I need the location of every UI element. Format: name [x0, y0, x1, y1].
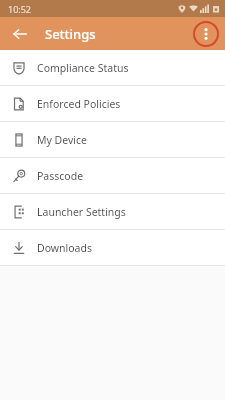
staticText: Settings [45, 25, 96, 43]
staticText: Passcode [37, 169, 84, 183]
button[interactable]: Downloads [0, 230, 225, 265]
button[interactable]: My Device [0, 122, 225, 157]
staticText: Launcher Settings [37, 205, 126, 219]
button[interactable]: Compliance Status [0, 50, 225, 85]
staticText: Compliance Status [37, 61, 129, 75]
staticText: My Device [37, 133, 87, 147]
staticText: Enforced Policies [37, 97, 121, 111]
button[interactable]: Back [6, 20, 34, 48]
button[interactable]: Launcher Settings [0, 194, 225, 229]
staticText: 10:52 [8, 3, 32, 15]
button[interactable]: More options [191, 19, 221, 49]
button[interactable]: Passcode [0, 158, 225, 193]
staticText: Downloads [37, 241, 92, 255]
button[interactable]: Enforced Policies [0, 86, 225, 121]
